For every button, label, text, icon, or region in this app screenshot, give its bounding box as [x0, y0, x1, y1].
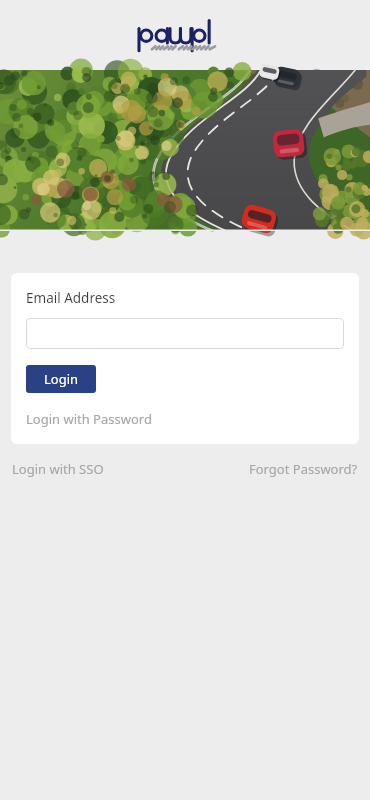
button[interactable]: Login with Password: [26, 410, 152, 428]
staticText: Email Address: [26, 289, 116, 307]
staticText: Login with Password: [26, 410, 152, 428]
button[interactable]: Login: [26, 365, 96, 393]
staticText: Login: [44, 370, 79, 388]
staticText: Forgot Password?: [249, 460, 358, 478]
button[interactable]: Login with SSO: [12, 458, 104, 480]
button[interactable]: Forgot Password?: [249, 458, 358, 480]
other: Mountain road landscape: [0, 70, 370, 231]
staticText: Login with SSO: [12, 460, 104, 478]
button[interactable]: [26, 318, 344, 349]
